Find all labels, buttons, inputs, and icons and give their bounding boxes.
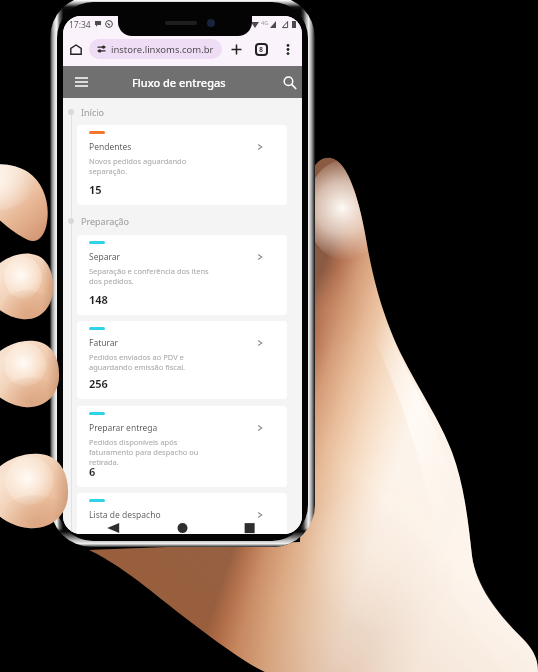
staticText: Separar (89, 251, 121, 263)
button[interactable]: Home (66, 39, 86, 59)
staticText: 6 (89, 464, 96, 479)
staticText: 4G (261, 19, 269, 26)
button[interactable]: New tab (226, 39, 246, 59)
button[interactable]: More options (278, 39, 298, 59)
button[interactable]: instore.linxoms.com.br (89, 39, 222, 59)
button[interactable]: Preparar entrega (77, 406, 287, 487)
staticText: Faturar (89, 337, 119, 349)
staticText: Separação e conferência dos itens (89, 266, 209, 276)
staticText: Lista de despacho (89, 509, 161, 521)
button[interactable]: Faturar (77, 321, 287, 399)
button[interactable]: Separar (77, 235, 287, 315)
staticText: instore.linxoms.com.br (111, 43, 214, 56)
button[interactable]: Tabs (251, 39, 271, 59)
staticText: 256 (89, 376, 108, 391)
button[interactable]: Lista de despacho (77, 493, 287, 534)
staticText: Pendentes (89, 141, 132, 153)
staticText: 148 (89, 292, 108, 307)
staticText: dos pedidos. (89, 276, 134, 286)
staticText: 8 (259, 45, 264, 54)
button[interactable]: Pendentes (77, 125, 287, 205)
staticText: Pedidos disponíveis após (89, 437, 178, 447)
staticText: Fluxo de entregas (132, 75, 226, 90)
staticText: aguardando emissão fiscal. (89, 362, 186, 372)
staticText: Novos pedidos aguardando (89, 156, 187, 166)
staticText: separação. (89, 166, 128, 176)
button[interactable]: Search (276, 66, 302, 98)
staticText: Preparar entrega (89, 422, 158, 434)
button[interactable]: Menu (69, 66, 302, 98)
staticText: Início (81, 106, 105, 118)
staticText: faturamento para despacho ou (89, 447, 199, 457)
staticText: Preparação (81, 215, 130, 227)
staticText: 17:34 (69, 19, 91, 31)
staticText: 15 (89, 182, 102, 197)
staticText: retirada. (89, 457, 119, 467)
staticText: Pedidos enviados ao PDV e (89, 352, 184, 362)
